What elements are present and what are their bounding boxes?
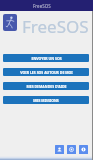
staticText: VOIR LES SOS AUTOUR DE MOI bbox=[20, 70, 73, 75]
button[interactable]: ENVOYER UN SOS bbox=[3, 54, 89, 62]
staticText: FreeSOS bbox=[33, 3, 51, 9]
staticText: ENVOYER UN SOS bbox=[31, 56, 62, 61]
button[interactable]: Profile bbox=[55, 145, 64, 154]
staticText: MES MISSIONS bbox=[33, 98, 59, 103]
button[interactable]: MES DEMANDES D'AIDE bbox=[3, 82, 89, 90]
staticText: MES DEMANDES D'AIDE bbox=[26, 84, 67, 89]
button[interactable]: Settings bbox=[67, 145, 76, 154]
button[interactable]: VOIR LES SOS AUTOUR DE MOI bbox=[3, 68, 89, 76]
button[interactable]: MES MISSIONS bbox=[3, 96, 89, 104]
staticText: FreeSOS bbox=[22, 15, 89, 38]
button[interactable]: Info bbox=[79, 145, 88, 154]
